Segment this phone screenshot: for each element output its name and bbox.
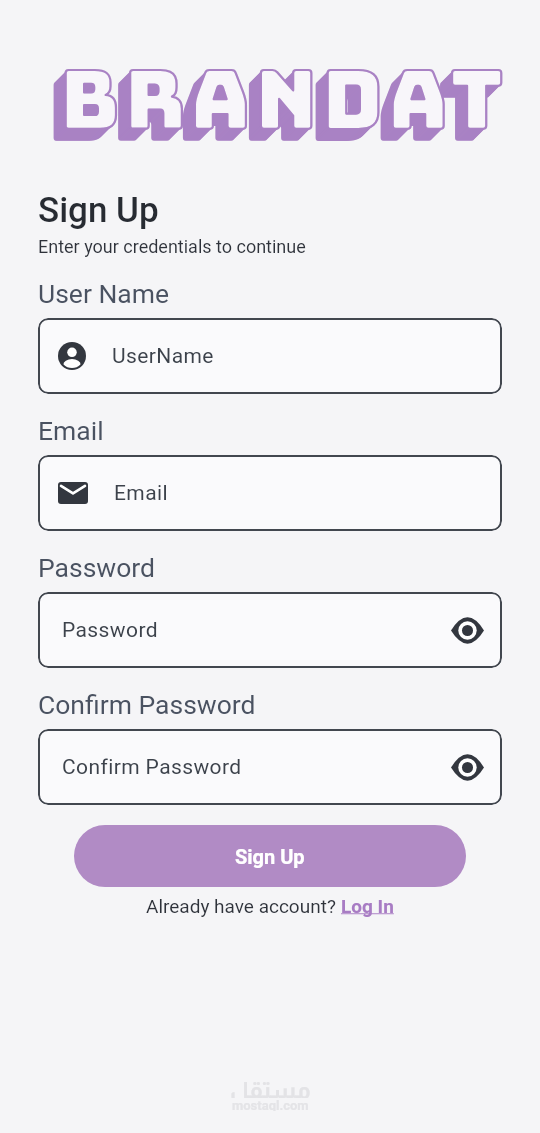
staticText: Confirm Password xyxy=(38,689,256,720)
button[interactable]: UserName xyxy=(38,318,502,394)
staticText: BRANDAT xyxy=(49,56,498,164)
staticText: BRANDAT xyxy=(56,49,505,157)
staticText: BRANDAT xyxy=(54,51,503,159)
button[interactable]: Password xyxy=(38,592,502,668)
staticText: Confirm Password xyxy=(62,755,451,780)
staticText: BRANDAT xyxy=(53,52,502,160)
staticText: UserName xyxy=(112,344,484,369)
button[interactable]: Log In xyxy=(341,895,394,917)
staticText: BRANDAT xyxy=(51,54,500,162)
staticText: Already have account? xyxy=(146,895,341,917)
staticText: BRANDAT xyxy=(57,48,506,156)
staticText: BRANDAT xyxy=(60,45,509,153)
staticText: BRANDAT xyxy=(55,50,504,158)
button[interactable]: Confirm Password xyxy=(38,729,502,805)
staticText: BRANDAT xyxy=(60,45,509,153)
staticText: Sign Up xyxy=(38,190,159,231)
staticText: BRANDAT xyxy=(52,53,501,161)
button[interactable]: Sign Up xyxy=(74,825,466,887)
staticText: mostaql.com xyxy=(232,1098,309,1111)
staticText: مستقل xyxy=(230,1077,311,1098)
staticText: Email xyxy=(114,481,484,506)
staticText: Enter your credentials to continue xyxy=(38,236,306,257)
staticText: User Name xyxy=(38,278,170,309)
staticText: BRANDAT xyxy=(48,57,497,165)
staticText: BRANDAT xyxy=(50,55,499,163)
staticText: Sign Up xyxy=(235,845,305,868)
staticText: Password xyxy=(62,618,451,643)
button[interactable]: Email xyxy=(38,455,502,531)
staticText: BRANDAT xyxy=(58,47,507,155)
staticText: Password xyxy=(38,552,156,583)
staticText: Email xyxy=(38,415,104,446)
staticText: BRANDAT xyxy=(59,46,508,154)
